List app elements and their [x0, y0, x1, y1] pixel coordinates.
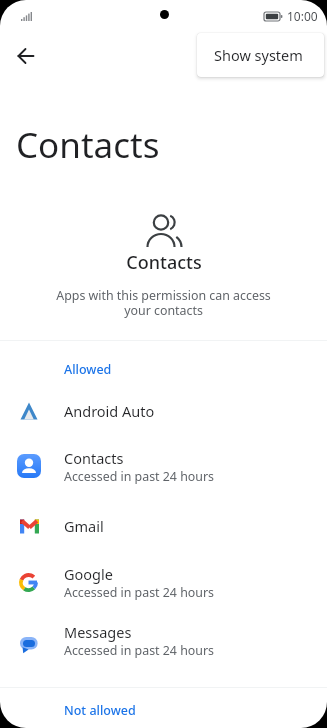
button[interactable]	[10, 40, 42, 72]
staticText: Accessed in past 24 hours	[64, 642, 215, 659]
staticText: Messages	[64, 622, 132, 642]
button[interactable]: Gmail	[0, 497, 327, 555]
staticText: Contacts	[16, 121, 160, 169]
staticText: 10:00	[287, 8, 318, 24]
button[interactable]: Not allowed	[48, 695, 136, 725]
staticText: Not allowed	[64, 702, 136, 719]
staticText: Accessed in past 24 hours	[64, 584, 215, 601]
staticText: Accessed in past 24 hours	[64, 468, 215, 485]
button[interactable]: Android Auto	[0, 387, 327, 435]
staticText: Apps with this permission can access you…	[56, 287, 271, 318]
staticText: Google	[64, 564, 113, 584]
button[interactable]: Show system	[197, 33, 324, 77]
staticText: Show system	[214, 45, 303, 65]
staticText: Android Auto	[64, 401, 155, 421]
button[interactable]: Messages	[0, 611, 327, 669]
staticText: Gmail	[64, 516, 104, 536]
button[interactable]: Google	[0, 554, 327, 610]
staticText: Contacts	[64, 448, 124, 468]
staticText: Contacts	[126, 250, 202, 275]
button[interactable]: Contacts	[0, 436, 327, 496]
staticText: Allowed	[64, 361, 112, 378]
